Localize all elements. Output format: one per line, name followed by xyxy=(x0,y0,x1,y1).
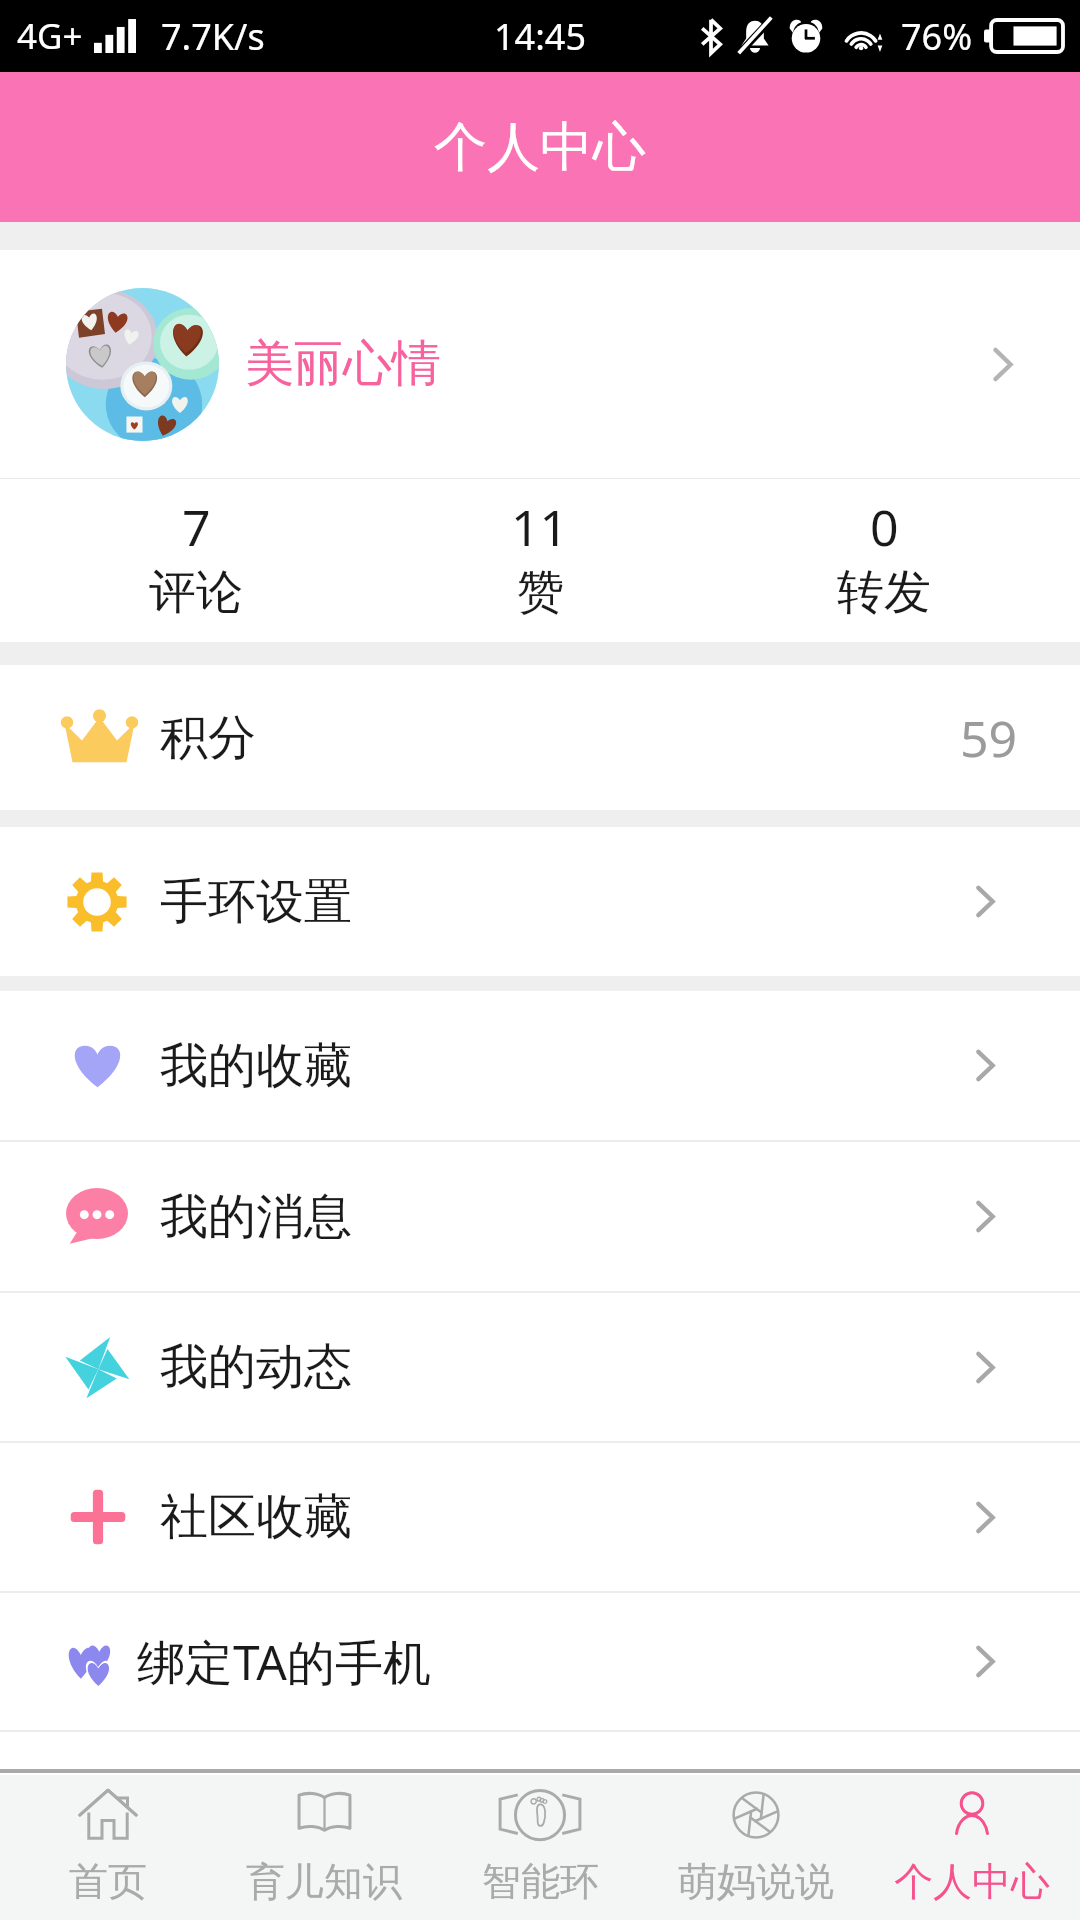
staticText: 11 xyxy=(511,493,569,561)
staticText: 我的动态 xyxy=(160,1337,352,1397)
staticText: 14:45 xyxy=(494,12,587,61)
staticText: 绑定TA的手机 xyxy=(137,1629,432,1695)
button[interactable]: 我的动态 xyxy=(0,1293,1080,1441)
staticText: 智能环 xyxy=(482,1857,599,1906)
button[interactable]: 我的收藏 xyxy=(0,991,1080,1140)
button[interactable]: 社区收藏 xyxy=(0,1443,1080,1591)
staticText: 积分 xyxy=(160,708,256,768)
staticText: 76% xyxy=(901,12,973,61)
staticText: 7 xyxy=(182,493,211,561)
button[interactable]: 智能环 xyxy=(432,1775,648,1920)
button[interactable]: 美丽心情 xyxy=(0,250,1080,478)
staticText: 美丽心情 xyxy=(245,333,441,395)
button[interactable]: 我的消息 xyxy=(0,1142,1080,1291)
staticText: 手环设置 xyxy=(160,872,352,932)
staticText: 我的收藏 xyxy=(160,1036,352,1096)
staticText: 评论 xyxy=(149,563,243,622)
button[interactable]: 11 xyxy=(368,479,712,642)
staticText: 社区收藏 xyxy=(160,1487,352,1547)
button[interactable]: 首页 xyxy=(0,1775,216,1920)
staticText: 个人中心 xyxy=(434,114,646,181)
staticText: 首页 xyxy=(69,1857,147,1906)
staticText: 赞 xyxy=(517,563,564,622)
staticText: 59 xyxy=(960,704,1018,772)
button[interactable]: 7 xyxy=(24,479,368,642)
button[interactable]: 手环设置 xyxy=(0,827,1080,976)
staticText: 我的消息 xyxy=(160,1187,352,1247)
staticText: 4G+ xyxy=(17,12,83,60)
button[interactable]: 0 xyxy=(712,479,1056,642)
button[interactable]: 积分 xyxy=(0,665,1080,810)
staticText: 育儿知识 xyxy=(246,1857,402,1906)
button[interactable]: 萌妈说说 xyxy=(648,1775,864,1920)
staticText: 个人中心 xyxy=(894,1857,1050,1906)
staticText: 萌妈说说 xyxy=(678,1857,834,1906)
staticText: 7.7K/s xyxy=(161,12,265,61)
staticText: 0 xyxy=(870,493,899,561)
staticText: 转发 xyxy=(837,563,931,622)
button[interactable]: 绑定TA的手机 xyxy=(0,1593,1080,1730)
button[interactable]: 个人中心 xyxy=(864,1775,1080,1920)
button[interactable]: 育儿知识 xyxy=(216,1775,432,1920)
